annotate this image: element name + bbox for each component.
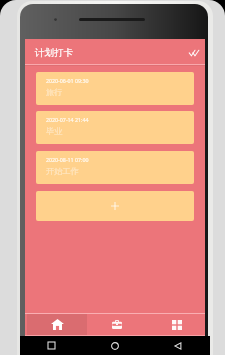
button[interactable]: Add plan [36, 191, 194, 221]
button[interactable]: 2020-08-11 07:00 [36, 151, 194, 184]
staticText: 旅行 [46, 87, 63, 97]
button[interactable]: Home [27, 313, 87, 336]
button[interactable]: Complete all [187, 46, 201, 60]
staticText: 2020-07-14 21:44 [46, 116, 89, 123]
staticText: 开始工作 [46, 166, 79, 176]
button[interactable]: Apps [147, 313, 207, 336]
staticText: 计划打卡 [35, 47, 73, 59]
staticText: 毕业 [46, 126, 63, 136]
button[interactable]: 2020-06-01 09:30 [36, 72, 194, 105]
staticText: 2020-08-11 07:00 [46, 156, 89, 163]
staticText: 2020-06-01 09:30 [46, 77, 89, 84]
button[interactable]: 2020-07-14 21:44 [36, 111, 194, 144]
button[interactable]: Work [87, 313, 147, 336]
